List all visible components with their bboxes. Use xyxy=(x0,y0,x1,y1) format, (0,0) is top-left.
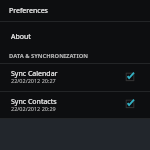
other: Toggle Sync Contacts xyxy=(125,98,139,112)
staticText: 22/02/2012 20:29 xyxy=(11,105,56,112)
button[interactable]: Preferences xyxy=(0,0,150,21)
staticText: DATA & SYNCHRONIZATION xyxy=(9,52,88,60)
button[interactable]: Sync Contacts xyxy=(0,92,150,118)
staticText: 22/02/2012 20:27 xyxy=(11,77,56,84)
button[interactable]: Sync Calendar xyxy=(0,64,150,91)
button[interactable]: About xyxy=(0,22,150,63)
staticText: Preferences xyxy=(9,6,48,16)
staticText: Sync Calendar xyxy=(11,69,58,79)
staticText: Sync Contacts xyxy=(11,97,57,107)
other: Toggle Sync Calendar xyxy=(125,71,139,85)
staticText: About xyxy=(11,32,31,42)
